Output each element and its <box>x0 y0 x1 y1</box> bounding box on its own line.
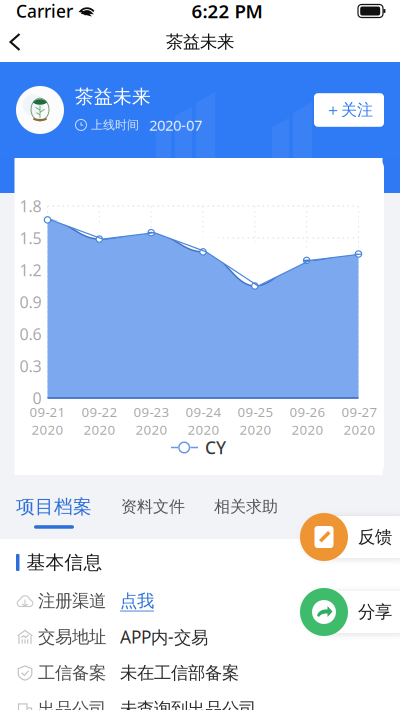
staticText: 0 <box>32 387 41 409</box>
staticText: 项目档案 <box>16 495 92 518</box>
staticText: 资料文件 <box>121 497 185 517</box>
staticText: Carrier <box>16 0 73 22</box>
staticText: 6:22 PM <box>191 0 262 23</box>
button[interactable]: 资料文件 <box>92 492 185 532</box>
button[interactable]: ＋关注 <box>314 93 384 127</box>
staticText: 工信备案 <box>38 662 106 684</box>
staticText: 09-25 <box>237 403 273 421</box>
staticText: 09-22 <box>81 403 117 421</box>
staticText: 09-23 <box>133 403 169 421</box>
staticText: 基本信息 <box>26 551 102 574</box>
staticText: 出品公司 <box>38 698 106 710</box>
staticText: 0.9 <box>19 291 41 313</box>
staticText: 2020 <box>239 421 271 438</box>
staticText: 09-26 <box>289 403 325 421</box>
staticText: 09-24 <box>185 403 221 421</box>
staticText: 1.5 <box>19 227 41 249</box>
staticText: 相关求助 <box>214 497 278 517</box>
staticText: 09-21 <box>29 403 65 421</box>
staticText: 09-27 <box>341 403 377 421</box>
staticText: APP内-交易 <box>120 625 208 648</box>
button[interactable]: 相关求助 <box>185 492 278 532</box>
staticText: 反馈 <box>358 526 392 548</box>
staticText: 0.6 <box>19 323 41 345</box>
staticText: CY <box>205 436 226 459</box>
staticText: 1.8 <box>19 195 41 217</box>
staticText: 茶益未来 <box>166 31 234 53</box>
staticText: 2020 <box>343 421 375 438</box>
staticText: ＋关注 <box>325 100 373 120</box>
staticText: 2020 <box>83 421 115 438</box>
button[interactable]: Back <box>0 26 44 58</box>
staticText: 未在工信部备案 <box>120 662 239 684</box>
staticText: 注册渠道 <box>38 590 106 612</box>
button[interactable]: 反馈 <box>300 513 400 561</box>
staticText: 交易地址 <box>38 626 106 648</box>
staticText: 2020 <box>291 421 323 438</box>
staticText: 2020 <box>31 421 63 438</box>
staticText: 点我 <box>120 590 154 612</box>
staticText: 上线时间 <box>91 118 139 132</box>
staticText: 未查询到出品公司 <box>120 698 256 710</box>
button[interactable]: 点我 <box>106 590 154 612</box>
staticText: 2020 <box>187 421 219 438</box>
button[interactable]: 项目档案 <box>16 492 92 532</box>
staticText: 茶益未来 <box>75 85 151 108</box>
button[interactable]: 分享 <box>300 588 400 636</box>
staticText: 1.2 <box>19 259 41 281</box>
staticText: 2020-07 <box>149 115 202 135</box>
staticText: 0.3 <box>19 355 41 377</box>
staticText: 2020 <box>135 421 167 438</box>
staticText: 分享 <box>358 601 392 623</box>
